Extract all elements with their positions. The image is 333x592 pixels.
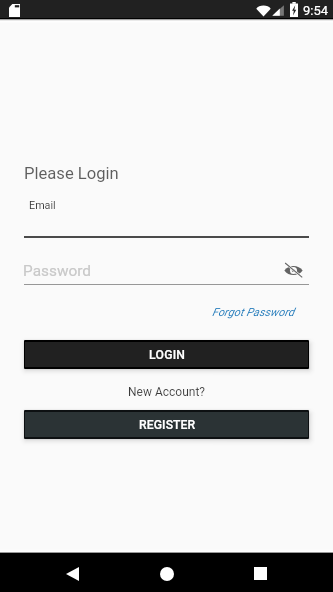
button[interactable]: Home bbox=[147, 554, 187, 592]
staticText: Email bbox=[29, 199, 56, 212]
staticText: New Account? bbox=[128, 385, 205, 399]
button[interactable]: LOGIN bbox=[24, 340, 309, 369]
button[interactable]: Back bbox=[53, 554, 93, 592]
button[interactable]: Toggle password visibility bbox=[284, 263, 303, 278]
staticText: REGISTER bbox=[139, 418, 196, 432]
staticText: LOGIN bbox=[149, 348, 186, 362]
staticText: Password bbox=[23, 262, 91, 280]
staticText: Please Login bbox=[24, 164, 119, 183]
staticText: 9:54 bbox=[303, 3, 329, 18]
button[interactable]: Forgot Password bbox=[212, 306, 295, 319]
button[interactable]: Recents bbox=[240, 554, 280, 592]
button[interactable]: REGISTER bbox=[24, 410, 309, 439]
